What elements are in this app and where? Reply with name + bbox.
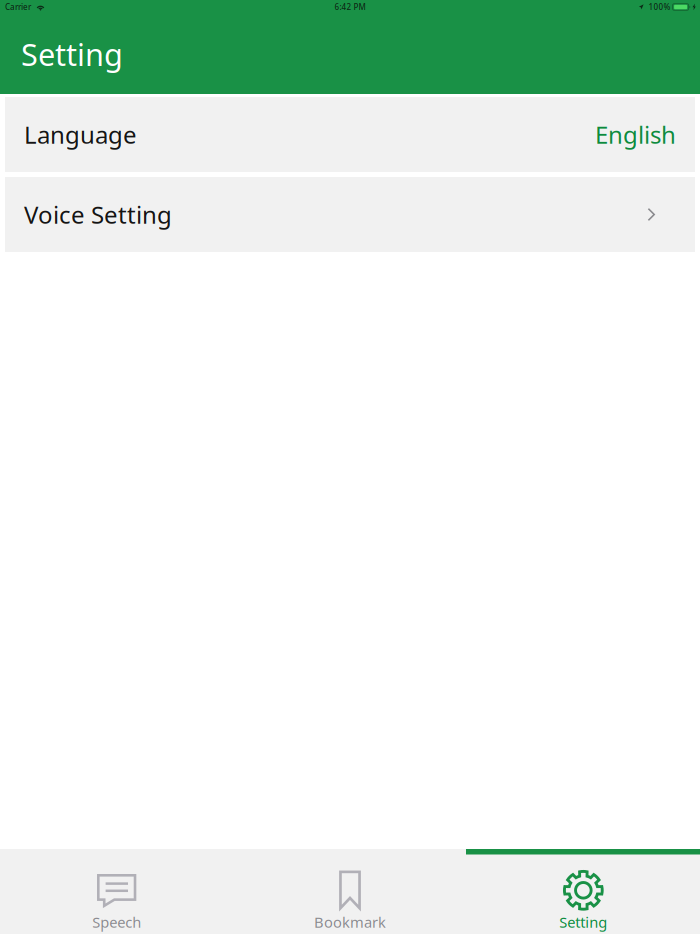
staticText: Setting — [559, 912, 607, 932]
staticText: Voice Setting — [24, 199, 172, 230]
staticText: Carrier — [5, 2, 31, 12]
button[interactable]: Setting — [467, 849, 700, 934]
staticText: Setting — [21, 34, 123, 74]
staticText: Language — [24, 119, 137, 150]
staticText: Speech — [92, 912, 141, 932]
button[interactable]: Bookmark — [233, 849, 467, 934]
staticText: Bookmark — [314, 912, 386, 932]
staticText: English — [595, 119, 676, 150]
button[interactable]: Speech — [0, 849, 233, 934]
button[interactable]: Language — [5, 97, 695, 172]
staticText: 100% — [649, 2, 671, 12]
button[interactable]: Voice Setting — [5, 177, 695, 252]
staticText: 6:42 PM — [334, 2, 365, 12]
